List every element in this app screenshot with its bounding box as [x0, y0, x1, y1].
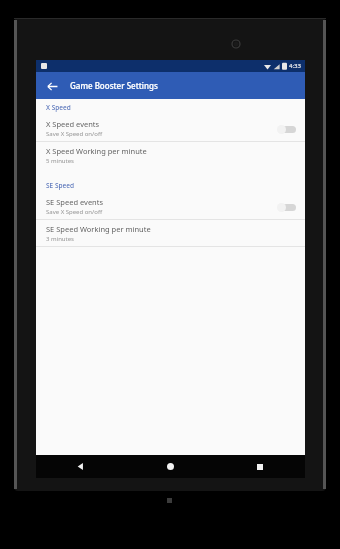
staticText: Game Booster Settings: [70, 80, 158, 91]
staticText: X Speed events: [46, 119, 100, 129]
button[interactable]: Recent apps: [215, 455, 305, 478]
button[interactable]: Toggle: [277, 122, 297, 136]
staticText: SE Speed: [46, 181, 74, 190]
button[interactable]: Home: [125, 455, 215, 478]
staticText: Save X Speed on/off: [46, 130, 103, 138]
button[interactable]: Back: [42, 76, 62, 96]
button[interactable]: Back: [36, 455, 125, 478]
staticText: X Speed: [46, 103, 71, 112]
button[interactable]: Toggle: [277, 200, 297, 214]
staticText: X Speed Working per minute: [46, 146, 147, 156]
staticText: 3 minutes: [46, 235, 74, 243]
button[interactable]: SE Speed events: [36, 194, 305, 219]
staticText: 4:33: [289, 62, 301, 70]
staticText: 5 minutes: [46, 157, 74, 165]
button[interactable]: X Speed Working per minute: [36, 142, 305, 168]
button[interactable]: X Speed events: [36, 116, 305, 141]
staticText: SE Speed Working per minute: [46, 224, 151, 234]
button[interactable]: SE Speed Working per minute: [36, 220, 305, 246]
staticText: Save X Speed on/off: [46, 208, 103, 216]
staticText: SE Speed events: [46, 197, 104, 207]
